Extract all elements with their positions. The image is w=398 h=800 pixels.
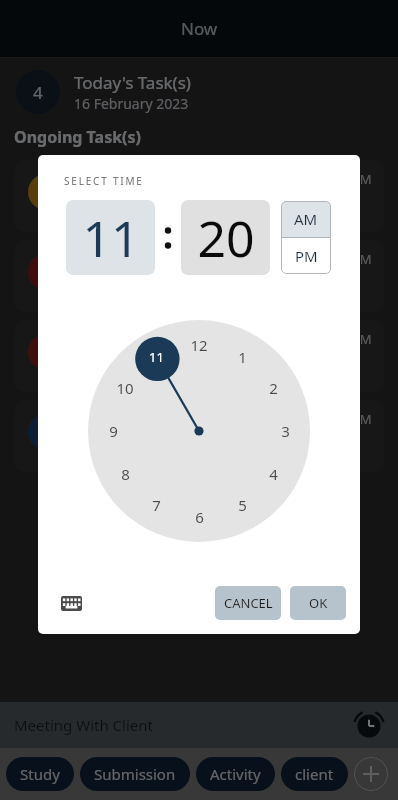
staticText: 5 [238,495,247,515]
staticText: 1 [238,347,247,367]
staticText: client [295,764,334,784]
staticText: Ongoing Task(s) [14,126,141,148]
button[interactable]: CANCEL [215,586,281,620]
button[interactable]: Switch to text input [56,588,86,618]
staticText: 11 [82,204,140,272]
staticText: 12 [190,335,208,355]
staticText: 2 [269,378,278,398]
staticText: Submission [94,764,176,784]
staticText: 4 [269,464,278,484]
staticText: Meeting With Client [14,715,153,735]
button[interactable]: OK [290,586,346,620]
staticText: 16 February 2023 [74,94,189,113]
staticText: AM [294,209,318,229]
staticText: 7 [152,495,161,515]
staticText: Study [20,764,60,784]
staticText: PM [352,170,372,188]
staticText: OK [309,594,328,612]
staticText: 20 [197,204,255,272]
staticText: 4 [33,81,43,104]
staticText: 9 [109,421,118,441]
button[interactable]: 11 [66,200,155,275]
staticText: Today's Task(s) [74,71,191,94]
button[interactable]: Activity [196,757,275,791]
staticText: PM [352,410,372,428]
staticText: 11 [149,348,164,366]
button[interactable]: Add [354,757,388,791]
button[interactable]: PM [281,238,331,274]
staticText: PM [295,246,318,266]
staticText: 10 [116,378,134,398]
staticText: 3 [281,421,290,441]
button[interactable]: Submission [80,757,190,791]
button[interactable]: client [281,757,348,791]
staticText: 6 [195,507,204,527]
staticText: Now [181,17,218,40]
staticText: SELECT TIME [64,174,144,188]
button[interactable]: AM [281,201,331,237]
button[interactable]: Alarm [354,710,384,740]
button[interactable]: Study [6,757,74,791]
button[interactable]: PM [14,160,384,232]
button[interactable]: 20 [181,200,270,275]
button[interactable]: PM [14,400,384,472]
staticText: 8 [121,464,130,484]
button[interactable]: PM [14,240,384,312]
staticText: CANCEL [224,594,273,612]
staticText: PM [352,250,372,268]
staticText: Activity [210,764,261,784]
button[interactable]: PM [14,320,384,392]
staticText: PM [352,330,372,348]
